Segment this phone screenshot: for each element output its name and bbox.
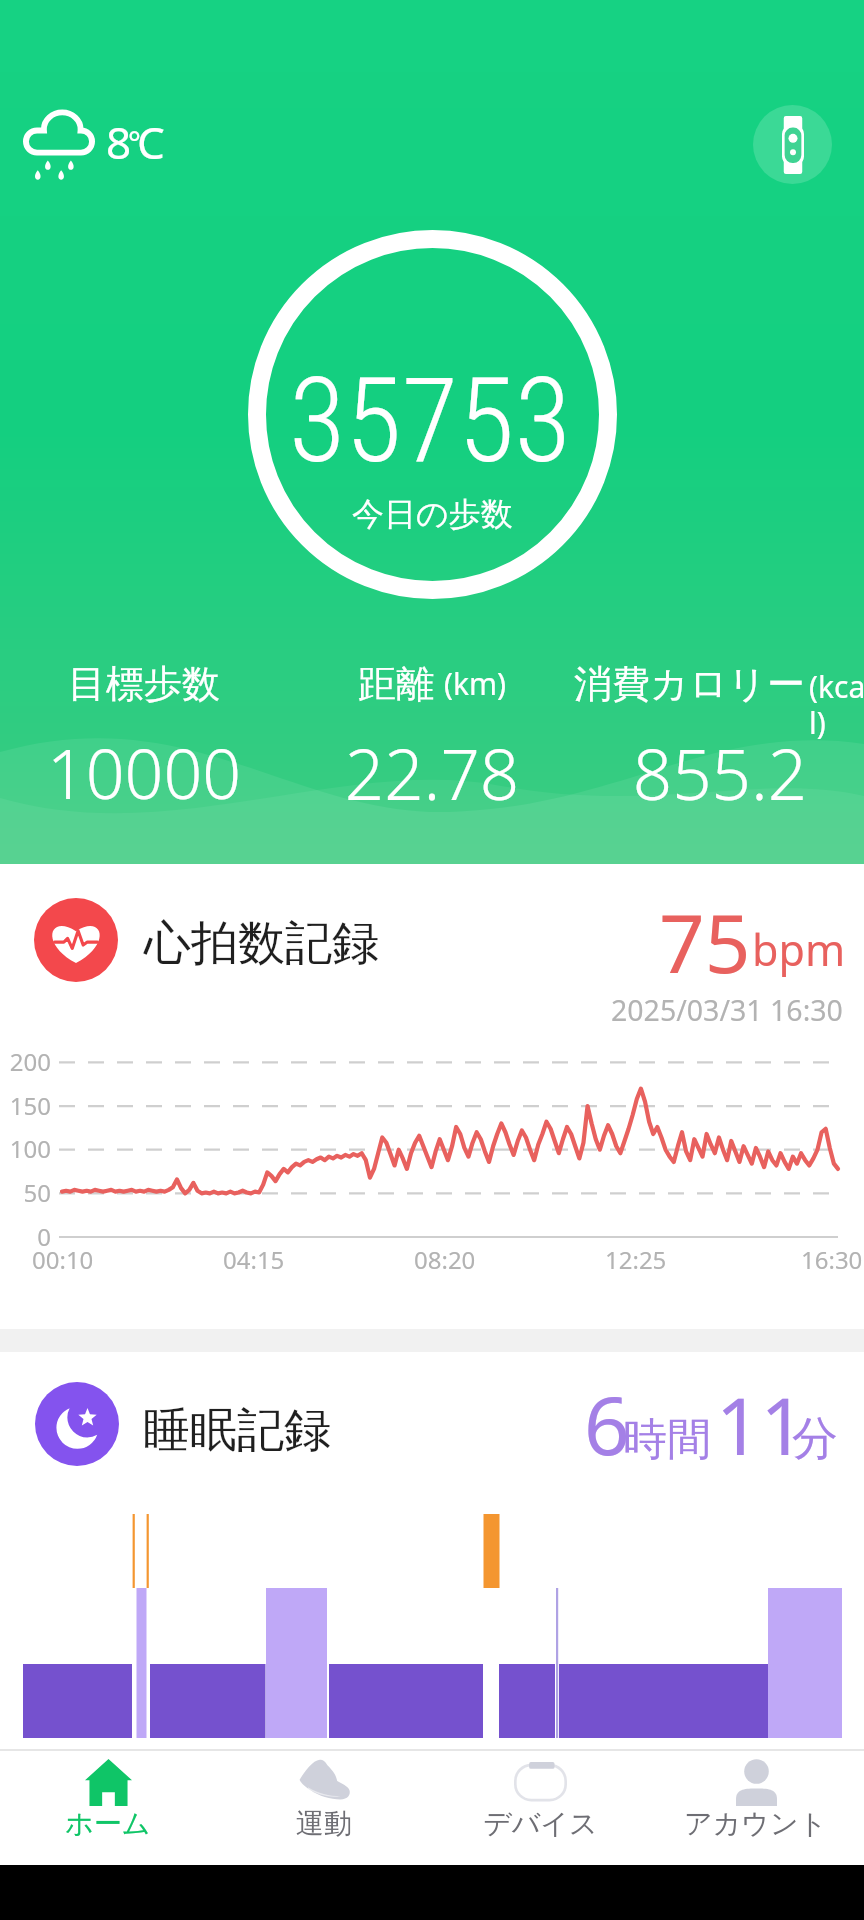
staticText: 16:30: [801, 1243, 863, 1276]
staticText: 75: [659, 887, 751, 996]
staticText: 心拍数記録: [144, 914, 379, 973]
staticText: アカウント: [684, 1806, 828, 1841]
staticText: 855.2: [576, 726, 864, 820]
staticText: 運動: [296, 1806, 352, 1841]
button[interactable]: デバイス: [432, 1751, 648, 1865]
staticText: C: [137, 112, 165, 172]
staticText: (km): [444, 663, 507, 704]
button[interactable]: 運動: [216, 1751, 432, 1865]
staticText: 10000: [0, 726, 288, 819]
staticText: 11: [716, 1372, 806, 1478]
staticText: 12:25: [605, 1243, 667, 1276]
staticText: 目標歩数: [0, 660, 288, 708]
button[interactable]: 睡眠記録: [0, 1352, 864, 1749]
staticText: 分: [792, 1410, 838, 1468]
staticText: 200: [0, 1045, 51, 1078]
staticText: 22.78: [288, 726, 576, 820]
staticText: 8: [106, 112, 132, 172]
button[interactable]: My device: [753, 105, 832, 184]
staticText: 0: [0, 1220, 51, 1253]
staticText: 今日の歩数: [352, 494, 513, 534]
staticText: ホーム: [65, 1806, 151, 1841]
staticText: 08:20: [414, 1243, 476, 1276]
staticText: 04:15: [223, 1243, 285, 1276]
button[interactable]: ホーム: [0, 1751, 216, 1865]
button[interactable]: アカウント: [648, 1751, 864, 1865]
staticText: 100: [0, 1132, 51, 1165]
staticText: 睡眠記録: [143, 1401, 331, 1460]
staticText: 6: [584, 1369, 630, 1478]
staticText: 00:10: [32, 1243, 94, 1276]
staticText: °: [128, 122, 141, 163]
staticText: 時間: [623, 1412, 711, 1467]
staticText: (kca l): [809, 666, 864, 743]
staticText: 35753: [289, 353, 571, 489]
staticText: 50: [0, 1176, 51, 1209]
button[interactable]: 心拍数記録: [0, 864, 864, 1329]
staticText: 距離: [358, 660, 434, 708]
staticText: bpm: [752, 920, 846, 979]
staticText: 150: [0, 1089, 51, 1122]
staticText: 2025/03/31 16:30: [611, 991, 843, 1030]
staticText: 消費カロリー: [574, 660, 805, 708]
staticText: デバイス: [483, 1806, 598, 1841]
